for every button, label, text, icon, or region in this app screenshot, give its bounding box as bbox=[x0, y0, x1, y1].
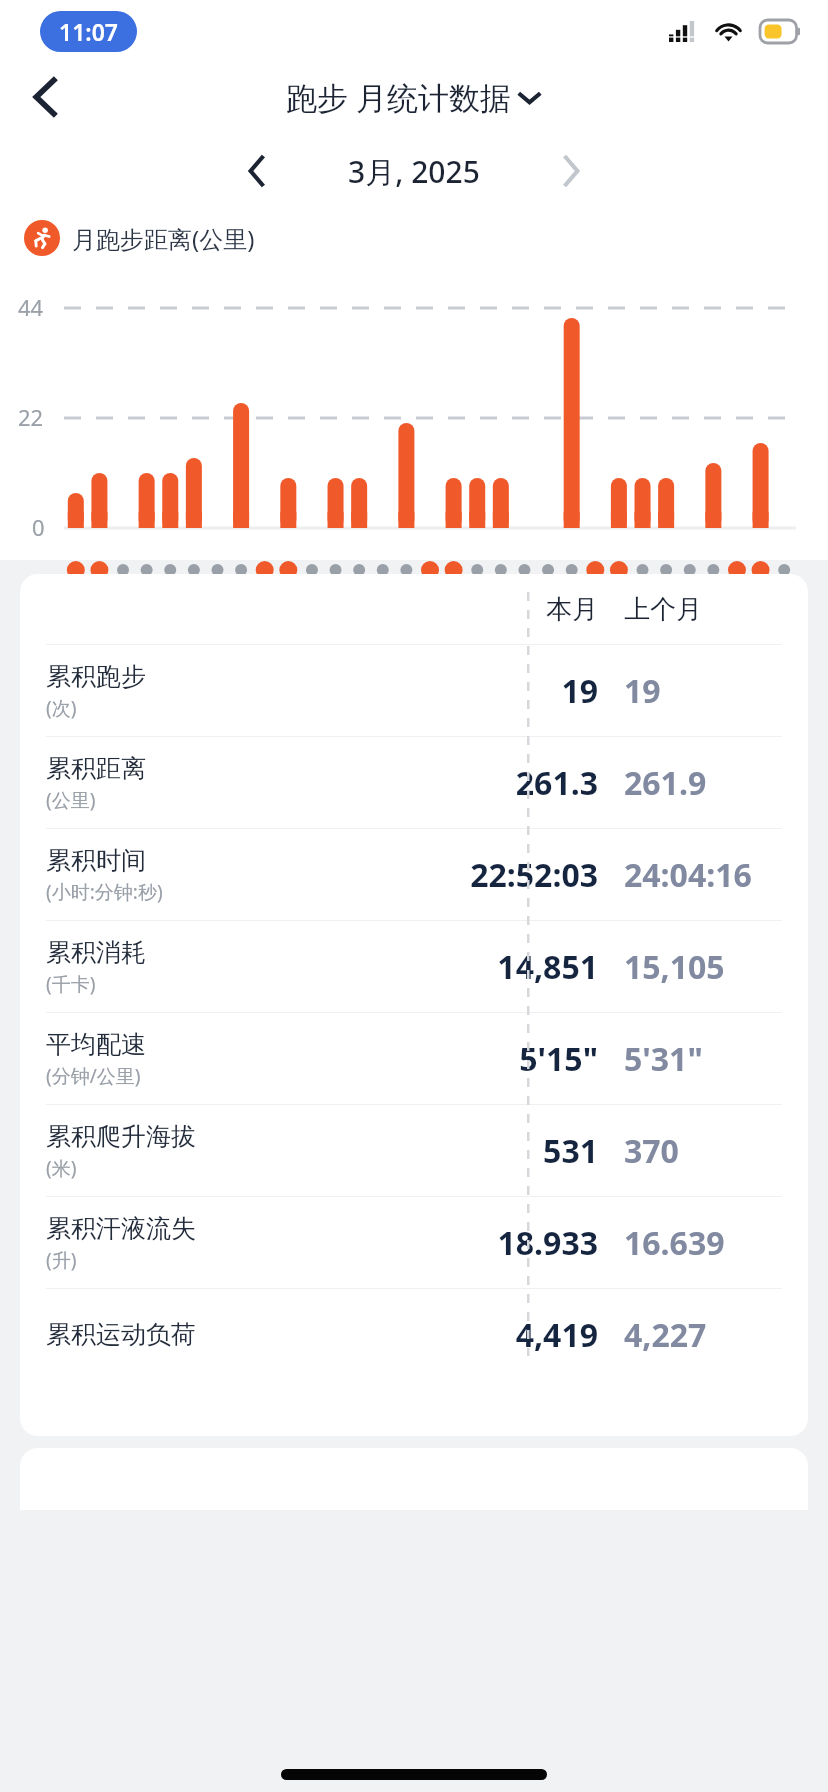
staticText: 跑步 月统计数据 bbox=[286, 76, 512, 118]
staticText: 14,851 bbox=[448, 945, 598, 989]
staticText: 531 bbox=[448, 1129, 598, 1173]
button[interactable]: 累积距离 bbox=[20, 737, 808, 828]
button[interactable]: 累积爬升海拔 bbox=[20, 1105, 808, 1196]
staticText: 累积汗液流失 bbox=[46, 1213, 196, 1244]
staticText: (米) bbox=[46, 1155, 77, 1181]
staticText: 16.639 bbox=[624, 1221, 794, 1265]
staticText: 月跑步距离(公里) bbox=[72, 222, 255, 255]
staticText: 44 bbox=[18, 292, 44, 322]
button[interactable]: 平均配速 bbox=[20, 1013, 808, 1104]
staticText: 累积消耗 bbox=[46, 937, 146, 968]
staticText: 累积爬升海拔 bbox=[46, 1121, 196, 1152]
staticText: 22 bbox=[18, 402, 44, 432]
staticText: (分钟/公里) bbox=[46, 1063, 141, 1089]
staticText: 4,227 bbox=[624, 1313, 794, 1357]
staticText: 累积跑步 bbox=[46, 661, 146, 692]
staticText: 24:04:16 bbox=[624, 853, 794, 897]
button[interactable]: 累积汗液流失 bbox=[20, 1197, 808, 1288]
staticText: (升) bbox=[46, 1247, 77, 1273]
staticText: 261.3 bbox=[448, 761, 598, 805]
staticText: 累积时间 bbox=[46, 845, 146, 876]
button[interactable]: Previous month bbox=[230, 144, 284, 198]
staticText: (次) bbox=[46, 695, 77, 721]
button[interactable]: Back bbox=[14, 66, 76, 128]
staticText: 19 bbox=[624, 669, 794, 713]
staticText: 5'31" bbox=[624, 1037, 794, 1081]
staticText: 19 bbox=[448, 669, 598, 713]
staticText: 18.933 bbox=[448, 1221, 598, 1265]
staticText: 平均配速 bbox=[46, 1029, 146, 1060]
button[interactable]: Next month bbox=[544, 144, 598, 198]
button[interactable]: 累积运动负荷 bbox=[20, 1289, 808, 1380]
staticText: 累积距离 bbox=[46, 753, 146, 784]
staticText: 4,419 bbox=[448, 1313, 598, 1357]
staticText: (千卡) bbox=[46, 971, 96, 997]
staticText: 22:52:03 bbox=[448, 853, 598, 897]
button[interactable]: 累积跑步 bbox=[20, 645, 808, 736]
staticText: 0 bbox=[32, 512, 45, 542]
staticText: 370 bbox=[624, 1129, 794, 1173]
staticText: 本月 bbox=[448, 593, 598, 626]
staticText: 261.9 bbox=[624, 761, 794, 805]
button[interactable]: 累积时间 bbox=[20, 829, 808, 920]
button[interactable]: 累积消耗 bbox=[20, 921, 808, 1012]
staticText: 累积运动负荷 bbox=[46, 1319, 196, 1350]
staticText: (小时:分钟:秒) bbox=[46, 879, 163, 905]
staticText: 15,105 bbox=[624, 945, 794, 989]
staticText: 3月, 2025 bbox=[348, 151, 480, 192]
staticText: 上个月 bbox=[624, 593, 794, 626]
staticText: (公里) bbox=[46, 787, 96, 813]
staticText: 11:07 bbox=[59, 16, 118, 47]
button[interactable]: 跑步 月统计数据 bbox=[286, 76, 542, 118]
staticText: 5'15" bbox=[448, 1037, 598, 1081]
